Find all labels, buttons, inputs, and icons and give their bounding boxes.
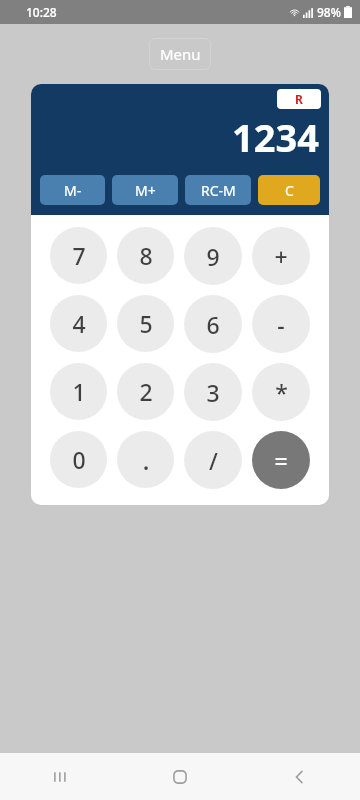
button[interactable]: - [252,295,310,353]
staticText: RC-M [201,181,236,200]
staticText: . [142,442,150,477]
button[interactable]: C [258,175,320,205]
staticText: 4 [72,308,86,339]
button[interactable]: 4 [50,295,107,352]
button[interactable]: * [252,363,310,421]
staticText: = [274,445,288,476]
staticText: 9 [206,241,220,272]
button[interactable]: + [252,227,310,285]
staticText: - [277,309,285,340]
button[interactable]: 5 [117,295,174,352]
staticText: M+ [135,181,156,200]
button[interactable]: = [252,431,310,489]
staticText: 10:28 [26,4,57,20]
staticText: M- [64,181,82,200]
staticText: 0 [72,444,86,475]
staticText: 6 [206,309,220,340]
staticText: 1234 [232,111,319,163]
button[interactable]: 9 [184,227,242,285]
staticText: Menu [160,44,201,64]
button[interactable]: 6 [184,295,242,353]
staticText: C [285,181,294,200]
staticText: + [274,241,288,272]
button[interactable]: M+ [112,175,178,205]
staticText: 98% [317,4,341,20]
staticText: / [209,445,218,476]
button[interactable]: 2 [117,363,174,420]
button[interactable]: 1 [50,363,107,420]
button[interactable]: R [277,89,321,109]
button[interactable]: . [117,431,174,488]
button[interactable]: Home [120,753,240,800]
staticText: 1 [72,376,86,407]
button[interactable]: 3 [184,363,242,421]
button[interactable]: 0 [50,431,107,488]
staticText: 2 [139,376,153,407]
button[interactable]: 7 [50,227,107,284]
staticText: 8 [139,240,153,271]
staticText: 7 [72,240,86,271]
button[interactable]: Menu [149,38,211,70]
staticText: 5 [139,308,153,339]
staticText: * [275,377,288,408]
staticText: 3 [206,377,220,408]
button[interactable]: M- [40,175,105,205]
button[interactable]: Recents [0,753,120,800]
button[interactable]: RC-M [185,175,251,205]
button[interactable]: Back [240,753,360,800]
button[interactable]: / [184,431,242,489]
button[interactable]: 8 [117,227,174,284]
staticText: R [295,91,303,107]
